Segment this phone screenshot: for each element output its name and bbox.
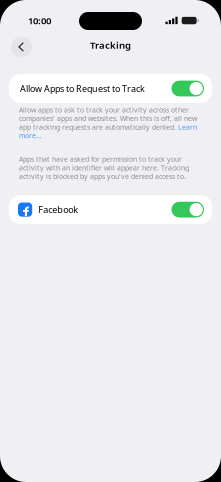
staticText: Allow apps to ask to track your activity… bbox=[19, 105, 197, 140]
staticText: Apps that have asked for permission to t… bbox=[19, 154, 189, 181]
button[interactable]: Back bbox=[5, 34, 38, 60]
staticText: Allow Apps to Request to Track bbox=[20, 82, 145, 95]
staticText: Facebook bbox=[38, 203, 78, 216]
button[interactable]: Facebook bbox=[9, 195, 212, 224]
staticText: 10:00 bbox=[28, 14, 51, 27]
staticText: Tracking bbox=[90, 38, 131, 52]
button[interactable]: Allow Apps to Request to Track bbox=[9, 74, 212, 103]
